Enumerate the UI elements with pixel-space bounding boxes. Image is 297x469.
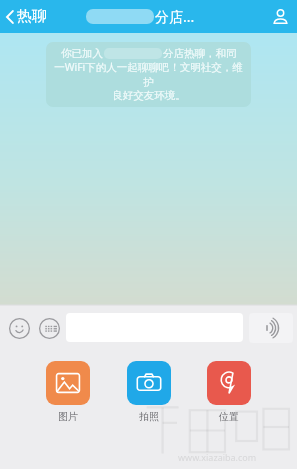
staticText: 分店热聊，和同	[163, 47, 237, 60]
staticText: 图片	[58, 410, 78, 423]
staticText: 热聊	[17, 7, 47, 26]
staticText: 良好交友环境。	[112, 89, 186, 102]
button[interactable]: 位置	[203, 359, 255, 425]
button[interactable]: 图片	[42, 359, 94, 425]
button[interactable]: Emoji	[4, 313, 34, 343]
button[interactable]: Voice	[249, 313, 293, 343]
staticText: 你已加入	[61, 47, 103, 60]
staticText: www.xiazaiba.com	[178, 451, 257, 463]
staticText: 一WiFi下的人一起聊聊吧！文明社交，维护	[54, 60, 243, 89]
button[interactable]: Members	[264, 0, 297, 33]
staticText: 拍照	[139, 410, 159, 423]
button[interactable]: 热聊	[0, 0, 53, 33]
button[interactable]: 拍照	[123, 359, 175, 425]
staticText: 分店...	[155, 7, 195, 26]
button[interactable]: Keyboard	[34, 313, 64, 343]
staticText: 位置	[219, 410, 239, 423]
